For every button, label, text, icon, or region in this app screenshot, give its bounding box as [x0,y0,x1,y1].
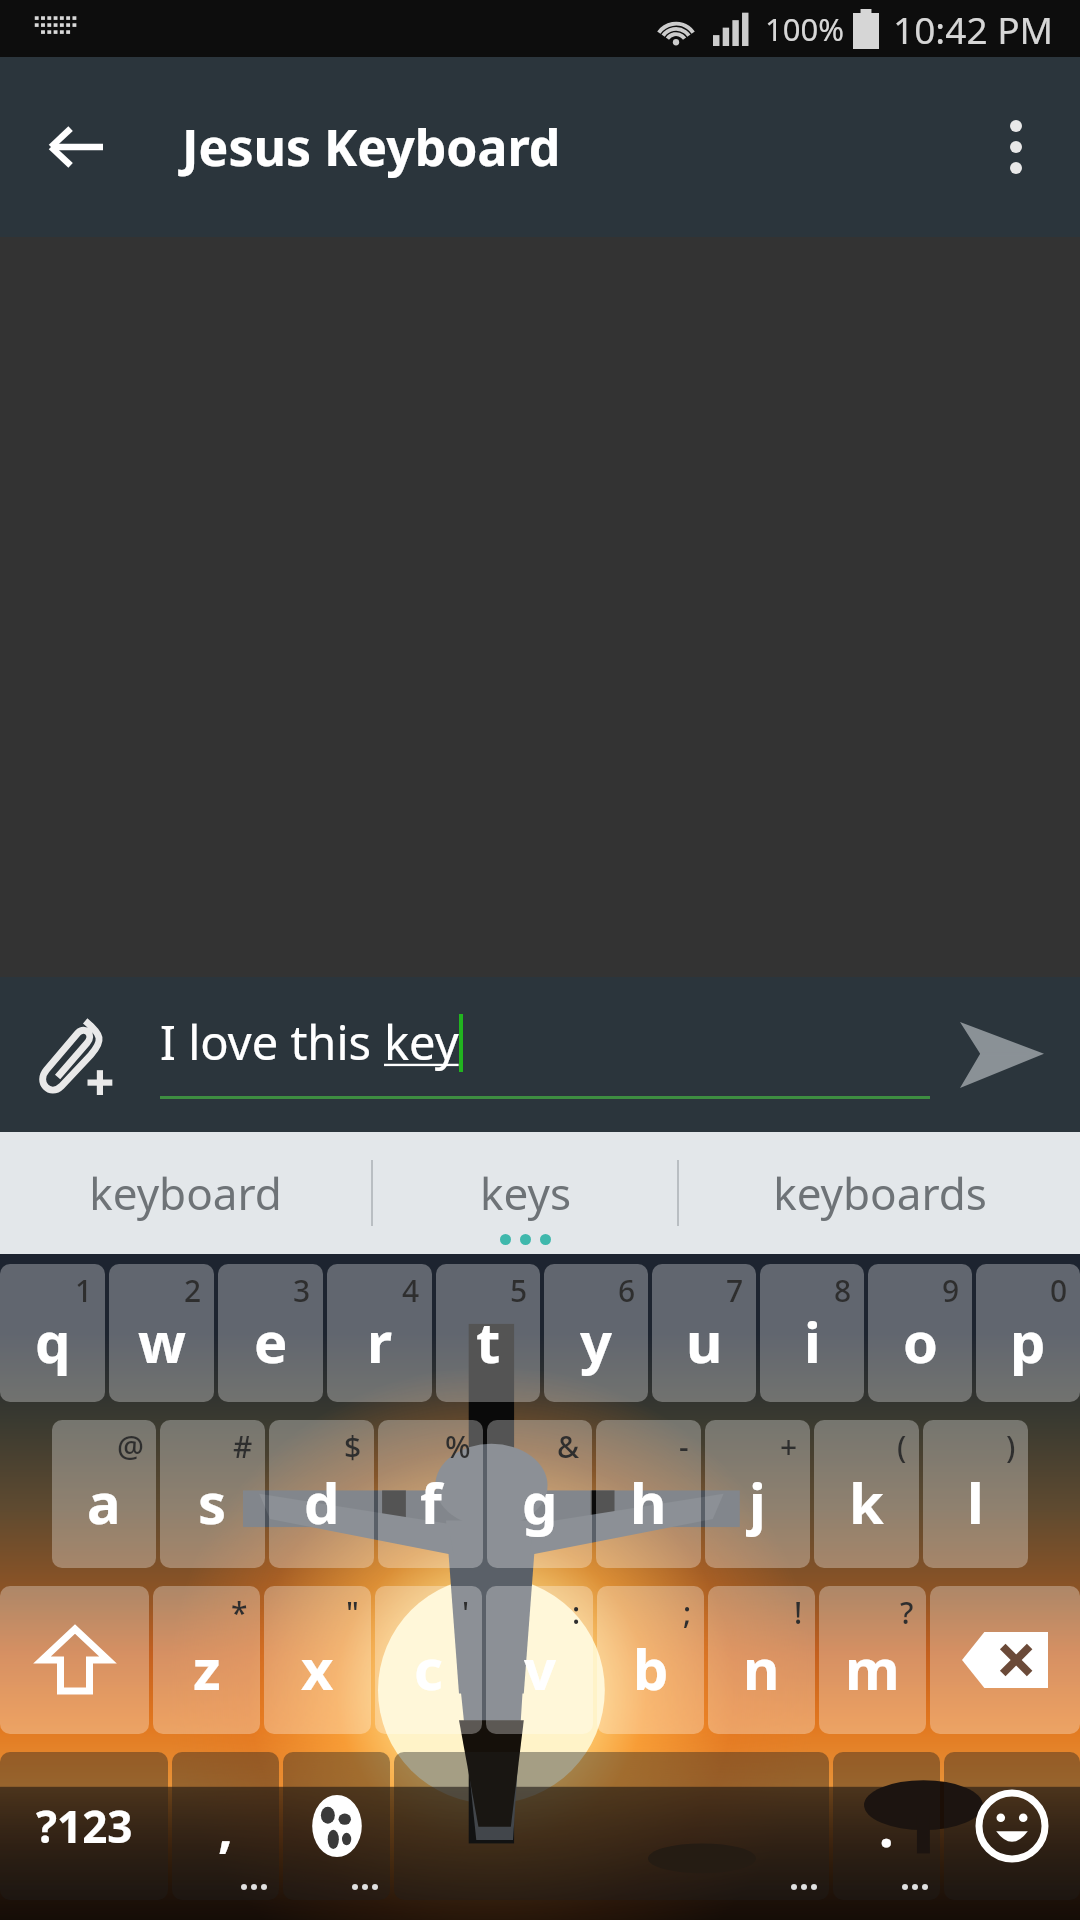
staticText: r [367,1303,393,1379]
staticText: : [572,1592,581,1633]
staticText: keys [480,1163,571,1223]
staticText: z [193,1630,221,1706]
button[interactable]: ' [375,1586,482,1734]
staticText: 7 [726,1270,744,1311]
staticText: 5 [510,1270,528,1311]
staticText: v [524,1630,556,1706]
staticText: k [849,1464,884,1540]
staticText: 1 [75,1270,93,1311]
staticText: * [231,1592,248,1633]
staticText: key [384,1010,459,1074]
button[interactable]: Period [833,1752,940,1900]
staticText: " [346,1592,359,1633]
button[interactable]: 4 [327,1264,432,1402]
staticText: j [749,1464,766,1540]
button[interactable]: @ [52,1420,156,1568]
staticText: d [304,1464,340,1540]
button[interactable]: ( [814,1420,919,1568]
button[interactable]: keyboards [679,1132,1080,1254]
button[interactable]: Change language [283,1752,390,1900]
button[interactable]: # [160,1420,265,1568]
staticText: + [780,1426,798,1467]
staticText: t [476,1303,501,1379]
staticText: u [686,1303,723,1379]
button[interactable]: * [153,1586,260,1734]
button[interactable]: 8 [760,1264,864,1402]
staticText: 100% [765,8,844,50]
staticText: y [580,1303,612,1379]
staticText: % [445,1426,471,1467]
staticText: g [522,1464,558,1540]
button[interactable]: Back [28,99,124,195]
staticText: l [967,1464,984,1540]
staticText: & [557,1426,580,1467]
button[interactable]: ? [819,1586,926,1734]
button[interactable]: : [486,1586,593,1734]
staticText: h [630,1464,667,1540]
staticText: 6 [618,1270,636,1311]
staticText: 2 [184,1270,202,1311]
staticText: e [254,1303,288,1379]
button[interactable]: 7 [652,1264,756,1402]
staticText: @ [117,1426,144,1467]
staticText: m [845,1630,900,1706]
button[interactable]: ; [597,1586,704,1734]
button[interactable]: 1 [0,1264,105,1402]
staticText: I love this [160,1010,384,1074]
staticText: 10:42 PM [893,4,1054,54]
button[interactable]: ?123 [0,1752,168,1900]
button[interactable]: + [705,1420,810,1568]
staticText: b [633,1630,669,1706]
button[interactable]: keyboard [0,1132,371,1254]
staticText: . [879,1791,894,1862]
staticText: ? [900,1592,914,1633]
button[interactable]: 0 [976,1264,1080,1402]
button[interactable]: Space [394,1752,829,1900]
staticText: c [414,1630,443,1706]
button[interactable]: keys [373,1132,677,1254]
button[interactable]: % [378,1420,483,1568]
button[interactable]: Comma [172,1752,279,1900]
button[interactable]: Attach [16,995,136,1115]
staticText: Jesus Keyboard [182,113,561,181]
staticText: n [743,1630,780,1706]
staticText: - [679,1426,689,1467]
button[interactable]: 6 [544,1264,648,1402]
button[interactable]: I love this [160,1010,930,1099]
staticText: f [420,1464,442,1540]
staticText: 8 [834,1270,852,1311]
button[interactable]: More options [968,99,1064,195]
staticText: x [301,1630,334,1706]
button[interactable]: $ [269,1420,374,1568]
button[interactable]: - [596,1420,701,1568]
staticText: ?123 [36,1796,133,1856]
button[interactable]: ) [923,1420,1028,1568]
button[interactable]: ! [708,1586,815,1734]
staticText: ) [1006,1426,1016,1467]
button[interactable]: 3 [218,1264,323,1402]
button[interactable]: Shift [0,1586,149,1734]
button[interactable]: Emoji [944,1752,1080,1900]
staticText: 3 [293,1270,311,1311]
staticText: w [138,1303,186,1379]
staticText: ! [794,1592,803,1633]
staticText: ; [683,1592,692,1633]
staticText: keyboard [89,1163,282,1223]
button[interactable]: " [264,1586,371,1734]
button[interactable]: Send [942,995,1062,1115]
staticText: 4 [402,1270,420,1311]
button[interactable]: & [487,1420,592,1568]
button[interactable]: 5 [436,1264,540,1402]
button[interactable]: 2 [109,1264,214,1402]
staticText: i [804,1303,821,1379]
staticText: q [35,1303,71,1379]
staticText: a [87,1464,121,1540]
button[interactable]: Delete [930,1586,1080,1734]
staticText: o [903,1303,938,1379]
staticText: 0 [1050,1270,1068,1311]
staticText: s [198,1464,227,1540]
button[interactable]: 9 [868,1264,972,1402]
staticText: # [233,1426,253,1467]
staticText: ( [897,1426,907,1467]
staticText: , [218,1791,233,1862]
